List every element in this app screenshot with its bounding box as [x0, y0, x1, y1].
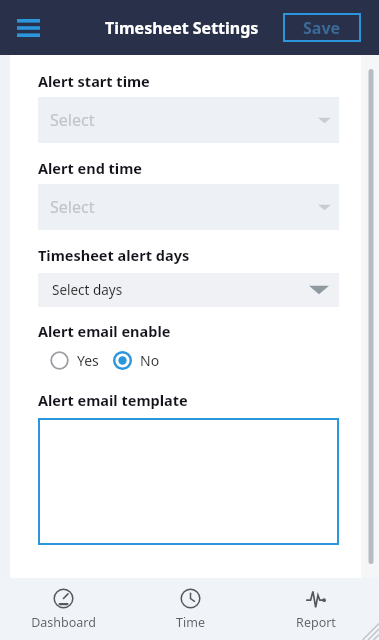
- staticText: Timesheet Settings: [105, 17, 259, 39]
- staticText: Dashboard: [31, 614, 96, 631]
- staticText: Yes: [77, 351, 99, 370]
- button[interactable]: No: [113, 347, 160, 374]
- button[interactable]: Yes: [50, 347, 99, 374]
- button[interactable]: Dashboard: [0, 578, 127, 640]
- staticText: Select days: [52, 281, 123, 299]
- button[interactable]: Time: [127, 578, 253, 640]
- button[interactable]: Save: [283, 13, 361, 42]
- staticText: Alert email enable: [38, 321, 171, 341]
- staticText: Alert end time: [38, 158, 142, 178]
- staticText: Alert start time: [38, 71, 150, 91]
- button[interactable]: Select: [38, 184, 339, 230]
- staticText: Alert email template: [38, 390, 188, 410]
- staticText: No: [140, 351, 160, 370]
- button[interactable]: Menu: [8, 8, 48, 48]
- staticText: Report: [296, 614, 336, 631]
- button[interactable]: Report: [253, 578, 379, 640]
- staticText: Time: [176, 614, 205, 631]
- staticText: Select: [50, 196, 95, 218]
- staticText: Timesheet alert days: [38, 245, 190, 265]
- button[interactable]: [38, 418, 339, 545]
- staticText: Select: [50, 109, 95, 131]
- staticText: Save: [303, 17, 341, 39]
- button[interactable]: Select days: [38, 273, 339, 307]
- button[interactable]: Select: [38, 97, 339, 143]
